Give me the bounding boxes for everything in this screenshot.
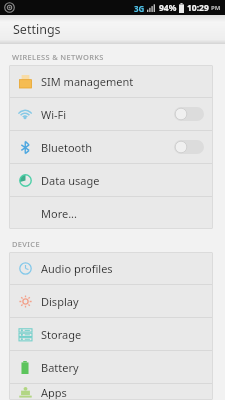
button[interactable]: Bluetooth (9, 131, 213, 163)
button[interactable]: Data usage (9, 164, 213, 196)
button[interactable]: Wi-Fi (9, 98, 213, 130)
staticText: Settings (13, 21, 61, 38)
staticText: PM (211, 4, 221, 12)
staticText: DEVICE (12, 239, 40, 249)
staticText: WIRELESS & NETWORKS (12, 52, 104, 62)
staticText: SIM management (41, 74, 134, 89)
staticText: Wi-Fi (41, 107, 67, 122)
staticText: More... (41, 206, 78, 221)
staticText: Audio profiles (41, 261, 113, 276)
staticText: Storage (41, 327, 82, 342)
staticText: 10:29 (187, 2, 209, 14)
staticText: 94% (159, 2, 177, 14)
button[interactable]: Display (9, 285, 213, 317)
button[interactable]: Audio profiles (9, 252, 213, 284)
other: Status indicator (4, 2, 15, 13)
staticText: Apps (41, 385, 67, 400)
button[interactable]: Storage (9, 318, 213, 350)
staticText: Bluetooth (41, 140, 93, 155)
staticText: 3G (134, 3, 145, 14)
staticText: Battery (41, 360, 79, 375)
button[interactable]: SIM management (9, 65, 213, 97)
button[interactable]: Battery (9, 351, 213, 383)
staticText: Display (41, 294, 79, 309)
button[interactable]: Apps (9, 384, 213, 400)
staticText: Data usage (41, 173, 100, 188)
button[interactable]: More... (9, 197, 213, 229)
